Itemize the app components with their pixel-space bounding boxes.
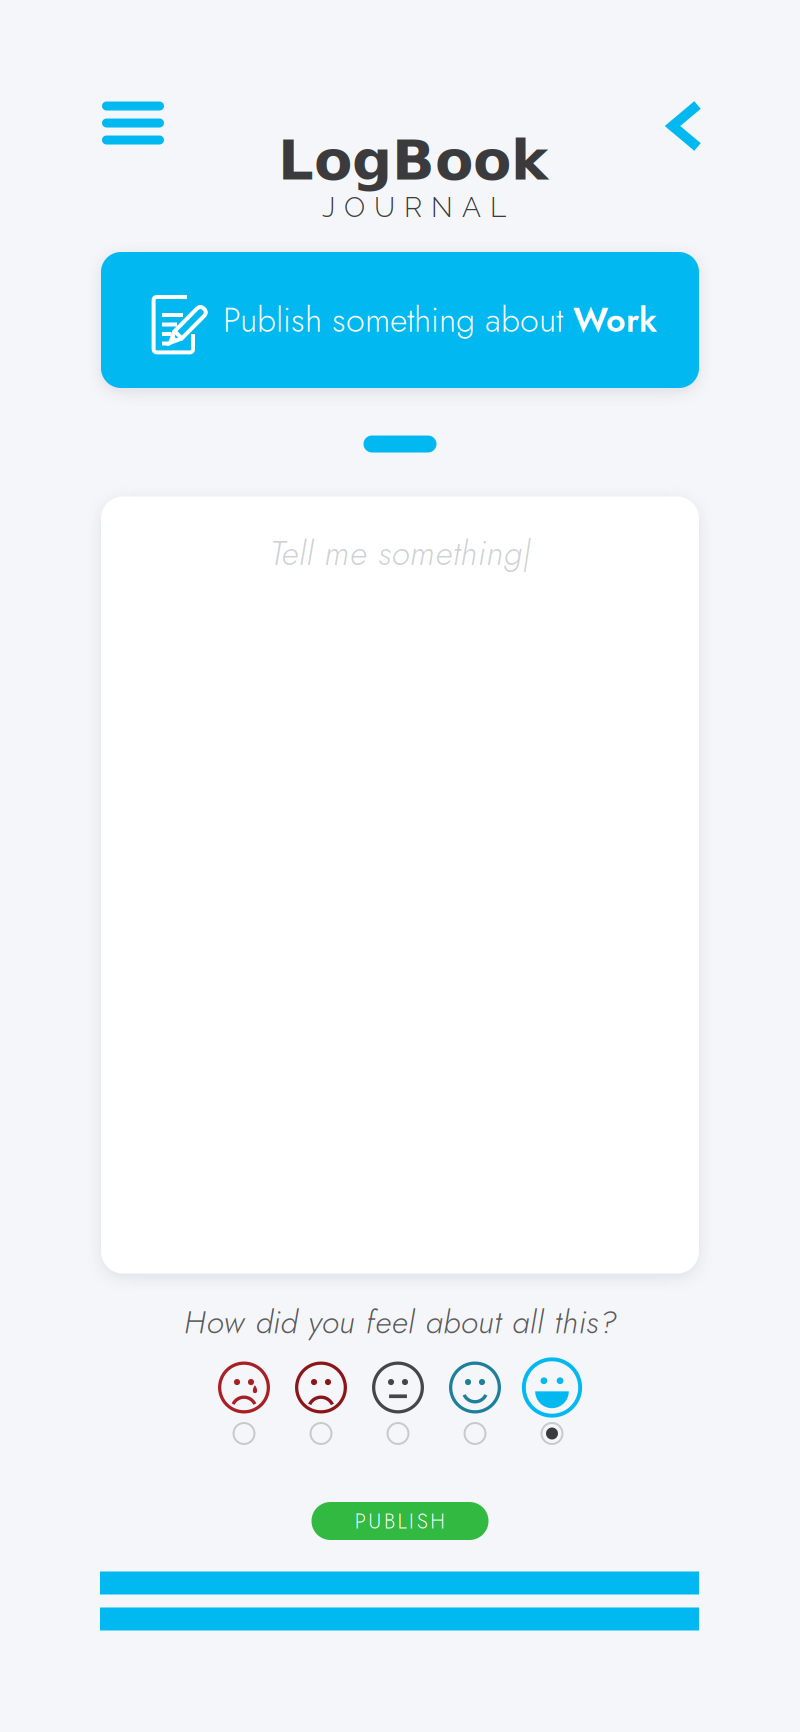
button[interactable]: Publish something about Work: [101, 252, 699, 388]
staticText: Publish something about Work: [223, 296, 657, 344]
button[interactable]: PUBLISH: [311, 1502, 488, 1540]
staticText: JOURNAL: [322, 191, 506, 223]
staticText: How did you feel about all this?: [184, 1299, 616, 1345]
button[interactable]: Back: [644, 85, 724, 167]
button[interactable]: Bad: [282, 1355, 359, 1447]
button[interactable]: Terrible: [205, 1355, 282, 1447]
staticText: LogBook: [278, 127, 548, 193]
staticText: PUBLISH: [355, 1506, 445, 1536]
staticText: Tell me something|: [270, 528, 530, 578]
button[interactable]: Good: [436, 1355, 513, 1447]
button[interactable]: Okay: [359, 1355, 436, 1447]
button[interactable]: Menu: [85, 82, 181, 164]
button[interactable]: Great: [513, 1355, 590, 1447]
